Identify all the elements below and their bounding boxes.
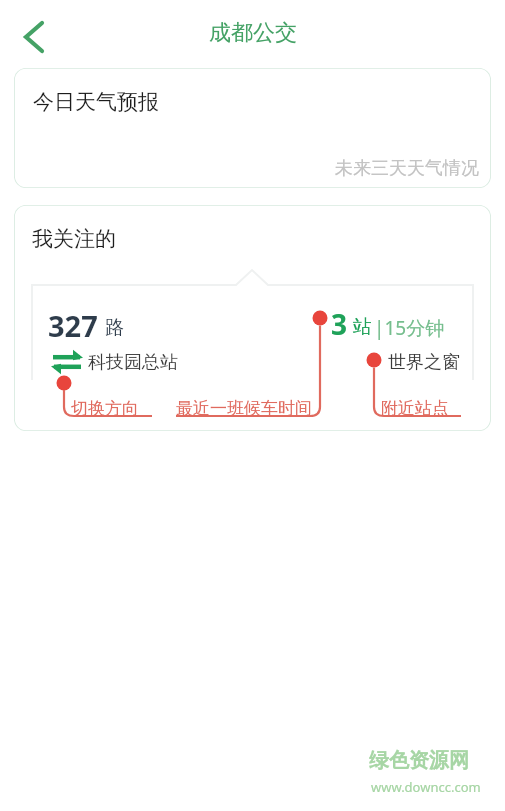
button[interactable]: 切换方向 (50, 350, 84, 374)
staticText: 绿色资源网 (369, 748, 469, 773)
staticText: 成都公交 (209, 19, 297, 47)
button[interactable]: 附近站点 (381, 398, 449, 419)
staticText: 科技园总站 (88, 351, 178, 374)
button[interactable]: 今日天气预报 (14, 68, 491, 188)
staticText: www.downcc.com (371, 778, 481, 796)
staticText: 今日天气预报 (33, 89, 159, 115)
button[interactable]: 切换方向 (71, 398, 139, 419)
staticText: |15分钟 (374, 315, 445, 341)
button[interactable]: 最近一班候车时间 (176, 398, 312, 419)
button[interactable]: Back (4, 10, 58, 64)
staticText: 未来三天天气情况 (335, 157, 479, 180)
staticText: 327 (48, 306, 98, 345)
staticText: 站 (353, 315, 372, 339)
staticText: 世界之窗 (388, 351, 460, 374)
button[interactable]: 327 (48, 306, 98, 345)
staticText: 我关注的 (32, 226, 116, 252)
staticText: 路 (105, 316, 124, 340)
staticText: 3 (331, 305, 348, 343)
